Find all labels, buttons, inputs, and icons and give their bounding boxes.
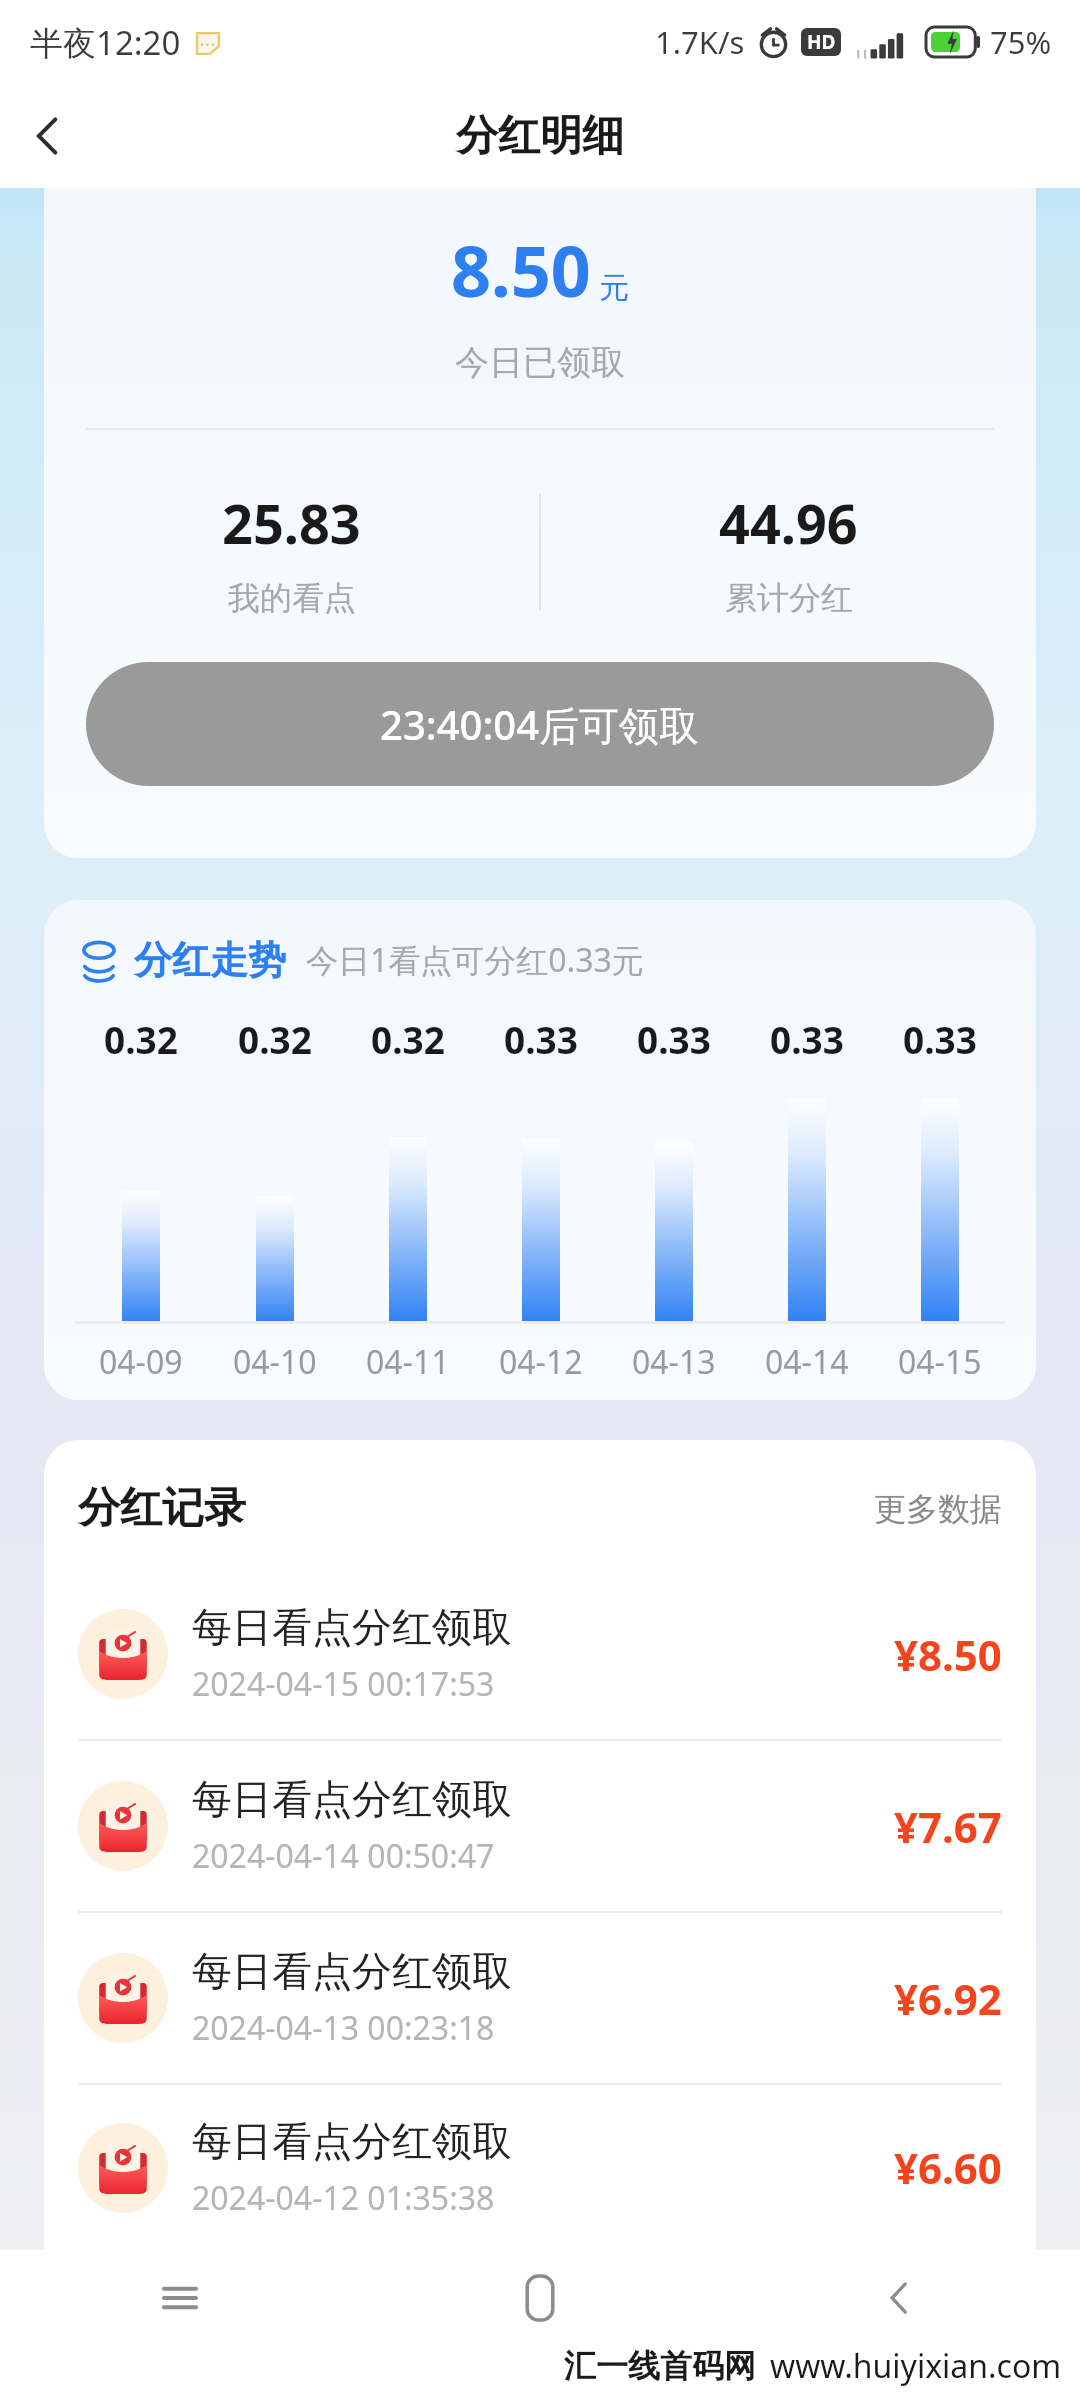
- staticText: 每日看点分红领取: [192, 1774, 512, 1824]
- staticText: ¥8.50: [894, 1626, 1002, 1683]
- staticText: 1.7K/s: [655, 21, 745, 63]
- staticText: 累计分红: [725, 578, 853, 618]
- staticText: 0.33: [903, 1014, 977, 1064]
- staticText: 25.83: [222, 486, 361, 560]
- staticText: 每日看点分红领取: [192, 2116, 512, 2166]
- staticText: 75%: [990, 21, 1052, 63]
- staticText: 04-10: [233, 1340, 317, 1384]
- staticText: ¥6.60: [894, 2139, 1002, 2196]
- staticText: 每日看点分红领取: [192, 1602, 512, 1652]
- staticText: www.huiyixian.com: [770, 2344, 1062, 2388]
- button[interactable]: Recent apps: [0, 2250, 360, 2346]
- button[interactable]: Back: [0, 88, 96, 184]
- staticText: 23:40:04后可领取: [380, 697, 700, 752]
- staticText: 分红明细: [456, 110, 624, 163]
- button[interactable]: 每日看点分红领取: [44, 1741, 1036, 1911]
- staticText: 04-09: [99, 1340, 183, 1384]
- staticText: 0.33: [504, 1014, 578, 1064]
- staticText: 今日1看点可分红0.33元: [306, 938, 644, 982]
- staticText: 0.33: [770, 1014, 844, 1064]
- button[interactable]: Home: [360, 2250, 720, 2346]
- button[interactable]: 25.83: [44, 486, 539, 618]
- button[interactable]: 每日看点分红领取: [44, 2085, 1036, 2250]
- staticText: 2024-04-12 01:35:38: [192, 2176, 495, 2220]
- button[interactable]: 每日看点分红领取: [44, 1913, 1036, 2083]
- staticText: 44.96: [719, 486, 858, 560]
- staticText: 2024-04-13 00:23:18: [192, 2006, 495, 2050]
- button[interactable]: 每日看点分红领取: [44, 1569, 1036, 1739]
- staticText: 04-12: [499, 1340, 583, 1384]
- staticText: 我的看点: [228, 578, 356, 618]
- staticText: 更多数据: [874, 1489, 1002, 1529]
- staticText: 04-11: [366, 1340, 450, 1384]
- staticText: 0.33: [637, 1014, 711, 1064]
- staticText: ¥6.92: [894, 1970, 1002, 2027]
- staticText: 0.32: [238, 1014, 312, 1064]
- button[interactable]: 44.96: [541, 486, 1036, 618]
- staticText: HD: [807, 29, 836, 55]
- staticText: 04-15: [898, 1340, 982, 1384]
- staticText: 2024-04-15 00:17:53: [192, 1662, 495, 1706]
- staticText: 今日已领取: [44, 341, 1036, 384]
- staticText: 2024-04-14 00:50:47: [192, 1834, 495, 1878]
- staticText: 0.32: [371, 1014, 445, 1064]
- staticText: 元: [599, 269, 629, 307]
- staticText: 半夜12:20: [30, 20, 181, 65]
- staticText: 分红走势: [134, 936, 286, 984]
- button[interactable]: Back: [720, 2250, 1080, 2346]
- staticText: 04-14: [765, 1340, 849, 1384]
- staticText: 每日看点分红领取: [192, 1946, 512, 1996]
- staticText: ¥7.67: [894, 1798, 1002, 1855]
- staticText: 汇一线首码网: [564, 2346, 756, 2386]
- staticText: 8.50: [451, 222, 591, 317]
- staticText: 0.32: [104, 1014, 178, 1064]
- button[interactable]: 23:40:04后可领取: [86, 662, 994, 786]
- button[interactable]: 更多数据: [874, 1489, 1002, 1529]
- staticText: 04-13: [632, 1340, 716, 1384]
- staticText: 分红记录: [78, 1482, 246, 1535]
